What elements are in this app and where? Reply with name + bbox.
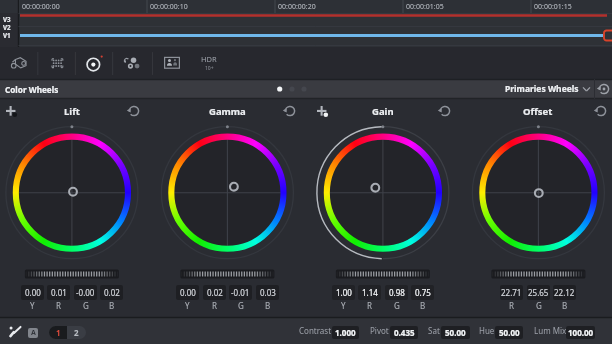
staticText: B [420,300,426,310]
button[interactable]: 22.71 [500,285,523,300]
staticText: 0.435 [394,327,415,338]
staticText: 100.00 [568,327,594,338]
button[interactable]: Gain wheel [317,127,449,259]
staticText: V3 [3,15,11,23]
staticText: -0.01 [231,287,250,298]
button[interactable]: Offset wheel [472,127,604,259]
staticText: Lum Mix [534,325,567,336]
button[interactable]: Contrast [299,323,332,338]
button[interactable]: HDR [191,47,227,79]
button[interactable]: Color match [39,47,75,79]
button[interactable]: 0.75 [411,285,434,300]
button[interactable]: Reset Offset [591,101,611,121]
staticText: Pivot [370,325,389,336]
button[interactable]: -0.00 [74,285,97,300]
button[interactable]: Lift wheel [6,127,138,259]
staticText: Hue [479,325,495,336]
staticText: 50.00 [499,327,520,338]
staticText: 1 [56,327,61,338]
staticText: Sat [428,325,440,336]
staticText: G [238,300,244,310]
staticText: 0.02 [207,287,223,298]
button[interactable]: 1.000 [332,326,359,339]
button[interactable]: Gain master [333,269,433,279]
staticText: 0.75 [415,287,431,298]
button[interactable]: 0.03 [256,285,279,300]
staticText: Gain [372,105,394,118]
staticText: 50.00 [445,327,466,338]
button[interactable]: Gamma [193,102,261,121]
staticText: 00:00:01:05 [406,2,444,12]
button[interactable]: 0.01 [47,285,70,300]
staticText: B [265,300,271,310]
button[interactable]: 0.00 [176,285,199,300]
button[interactable]: Lum Mix [534,323,567,338]
button[interactable]: 50.00 [495,326,523,339]
staticText: 0.03 [260,287,276,298]
button[interactable]: Hue [479,323,495,338]
button[interactable]: 1.00 [332,285,355,300]
staticText: 1.000 [335,327,356,338]
staticText: 0.98 [389,287,405,298]
staticText: -0.00 [76,287,95,298]
button[interactable]: 0.02 [100,285,123,300]
button[interactable]: Lift master [22,269,122,279]
staticText: R [367,300,372,310]
button[interactable]: Offset [504,102,572,121]
button[interactable]: Node A [28,328,38,338]
button[interactable]: Gamma wheel [161,127,293,259]
staticText: V1 [3,31,11,39]
button[interactable]: 22.12 [553,285,576,300]
button[interactable]: Reset Gain [435,101,455,121]
button[interactable]: 2 [67,326,86,339]
button[interactable]: 0.02 [203,285,226,300]
staticText: A [31,328,36,338]
staticText: 10+ [205,65,214,72]
button[interactable]: Reset Gamma [280,101,300,121]
staticText: Y [185,300,190,310]
staticText: B [109,300,115,310]
button[interactable]: Lift [38,102,106,121]
button[interactable]: Picker Gain [312,101,332,121]
button[interactable]: Qualifier [154,47,190,79]
staticText: Lift [64,105,80,118]
staticText: Y [341,300,346,310]
button[interactable]: -0.01 [229,285,252,300]
button[interactable]: Picker Lift [1,101,21,121]
staticText: 0.00 [25,287,41,298]
button[interactable]: 100.00 [566,326,595,339]
button[interactable]: Eyedropper [6,323,24,338]
staticText: 25.65 [528,287,549,298]
button[interactable]: Primaries Wheels [505,79,590,99]
staticText: G [394,300,400,310]
staticText: R [212,300,217,310]
button[interactable]: 1 [49,326,67,339]
button[interactable]: 0.98 [385,285,408,300]
button[interactable]: Sat [428,323,440,338]
button[interactable]: 1.14 [358,285,381,300]
button[interactable]: Color Wheels [5,79,59,99]
button[interactable]: Camera raw [1,47,37,79]
button[interactable]: 50.00 [441,326,470,339]
staticText: 1.14 [362,287,378,298]
button[interactable]: 0.00 [21,285,44,300]
button[interactable]: Pivot [370,323,389,338]
staticText: 0.00 [180,287,196,298]
button[interactable]: Curves [114,47,150,79]
staticText: Gamma [209,105,246,118]
staticText: 1.00 [336,287,352,298]
button[interactable]: 0.435 [390,326,418,339]
button[interactable]: Reset all [595,79,612,99]
button[interactable]: Gain [349,102,417,121]
staticText: Color Wheels [5,84,59,95]
button[interactable]: Color wheels [76,47,112,79]
staticText: 00:00:00:10 [150,2,188,12]
staticText: Contrast [299,325,332,336]
button[interactable]: 25.65 [527,285,550,300]
staticText: 00:00:00:20 [278,2,316,12]
button[interactable]: Reset Lift [124,101,144,121]
staticText: Y [30,300,35,310]
button[interactable]: Offset master [488,269,588,279]
button[interactable]: Gamma master [177,269,277,279]
staticText: Offset [523,105,553,118]
